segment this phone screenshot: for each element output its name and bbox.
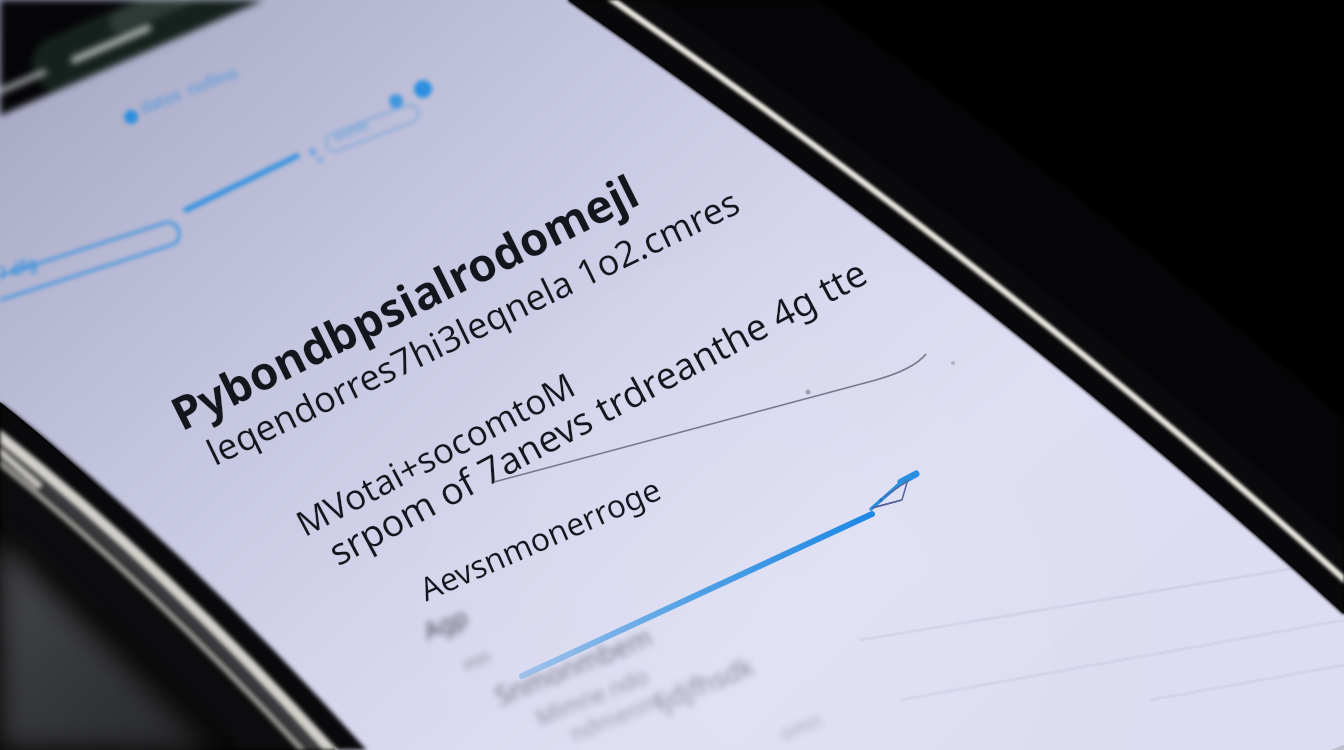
button[interactable]: Timeline slider [497,432,903,750]
button[interactable]: Network status chip [4,185,194,283]
button[interactable]: Send [853,455,933,533]
button[interactable]: Progress slider [178,114,310,206]
button[interactable]: Account [110,70,264,162]
button[interactable]: Filter chip [317,89,427,159]
